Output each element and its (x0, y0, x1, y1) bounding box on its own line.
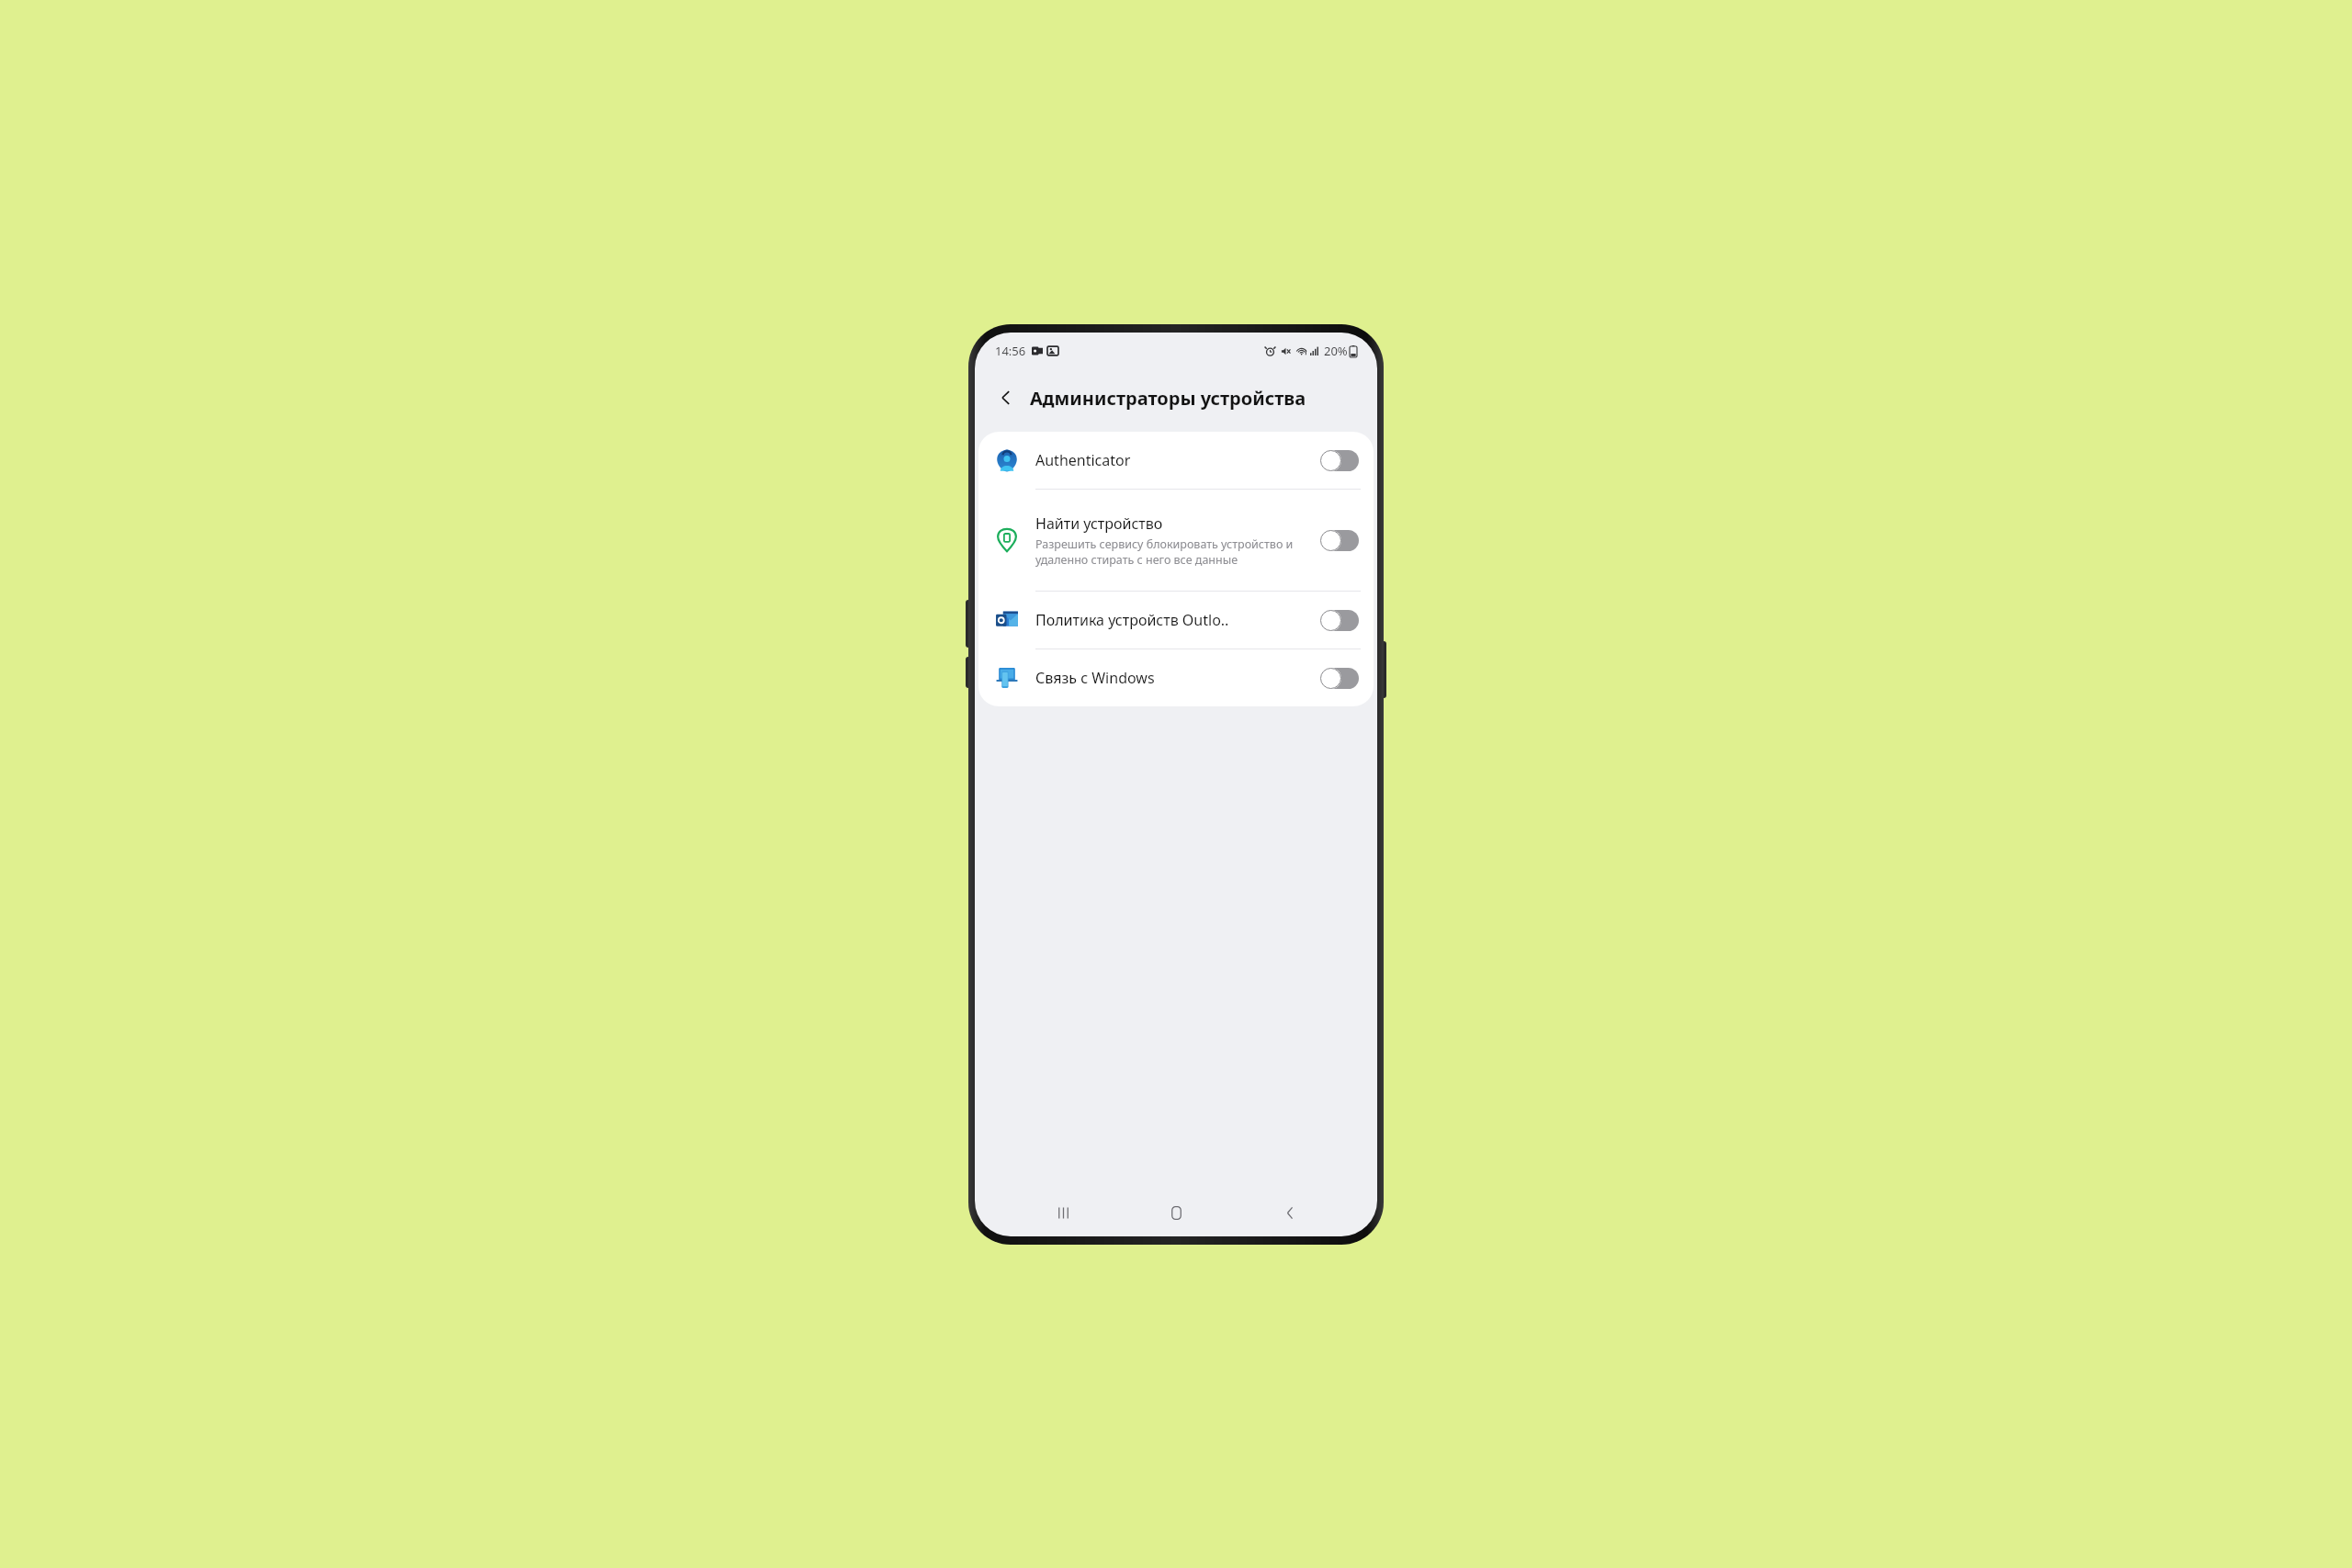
staticText: Authenticator (1035, 450, 1131, 470)
button[interactable]: Связь с Windows (978, 649, 1374, 706)
staticText: 20% (1324, 343, 1348, 359)
staticText: Разрешить сервису блокировать устройство… (1035, 536, 1313, 567)
button[interactable]: Найти устройство (978, 490, 1374, 591)
staticText: 14:56 (995, 343, 1026, 359)
button[interactable]: Назад (1264, 1189, 1316, 1236)
staticText: Найти устройство (1035, 513, 1163, 534)
button[interactable]: Назад (988, 379, 1024, 416)
button[interactable]: Переключатель (1320, 668, 1359, 689)
staticText: Связь с Windows (1035, 668, 1155, 688)
staticText: Администраторы устройства (1030, 386, 1306, 411)
button[interactable]: Главный экран (1150, 1189, 1202, 1236)
button[interactable]: Authenticator (978, 432, 1374, 489)
staticText: Политика устройств Outlo.. (1035, 610, 1229, 630)
button[interactable]: Переключатель (1320, 530, 1359, 551)
button[interactable]: Последние приложения (1037, 1189, 1089, 1236)
button[interactable]: Политика устройств Outlo.. (978, 592, 1374, 649)
button[interactable]: Переключатель (1320, 610, 1359, 631)
button[interactable]: Переключатель (1320, 450, 1359, 471)
